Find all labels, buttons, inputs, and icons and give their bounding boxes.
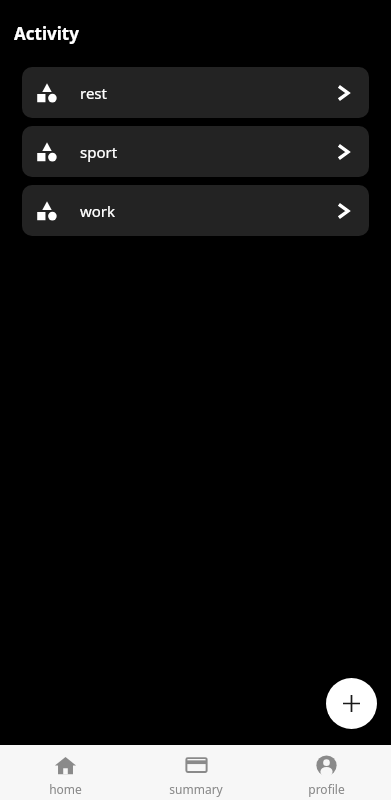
button[interactable]: rest xyxy=(22,67,369,118)
staticText: summary xyxy=(169,781,223,797)
staticText: sport xyxy=(80,142,118,162)
button[interactable]: Add activity xyxy=(326,678,377,729)
staticText: rest xyxy=(80,83,107,103)
staticText: work xyxy=(80,201,116,221)
staticText: profile xyxy=(308,781,345,797)
staticText: home xyxy=(49,781,82,797)
button[interactable]: summary xyxy=(131,745,261,797)
button[interactable]: profile xyxy=(261,745,391,797)
staticText: Activity xyxy=(14,22,79,45)
button[interactable]: sport xyxy=(22,126,369,177)
button[interactable]: home xyxy=(0,745,131,797)
button[interactable]: work xyxy=(22,185,369,236)
